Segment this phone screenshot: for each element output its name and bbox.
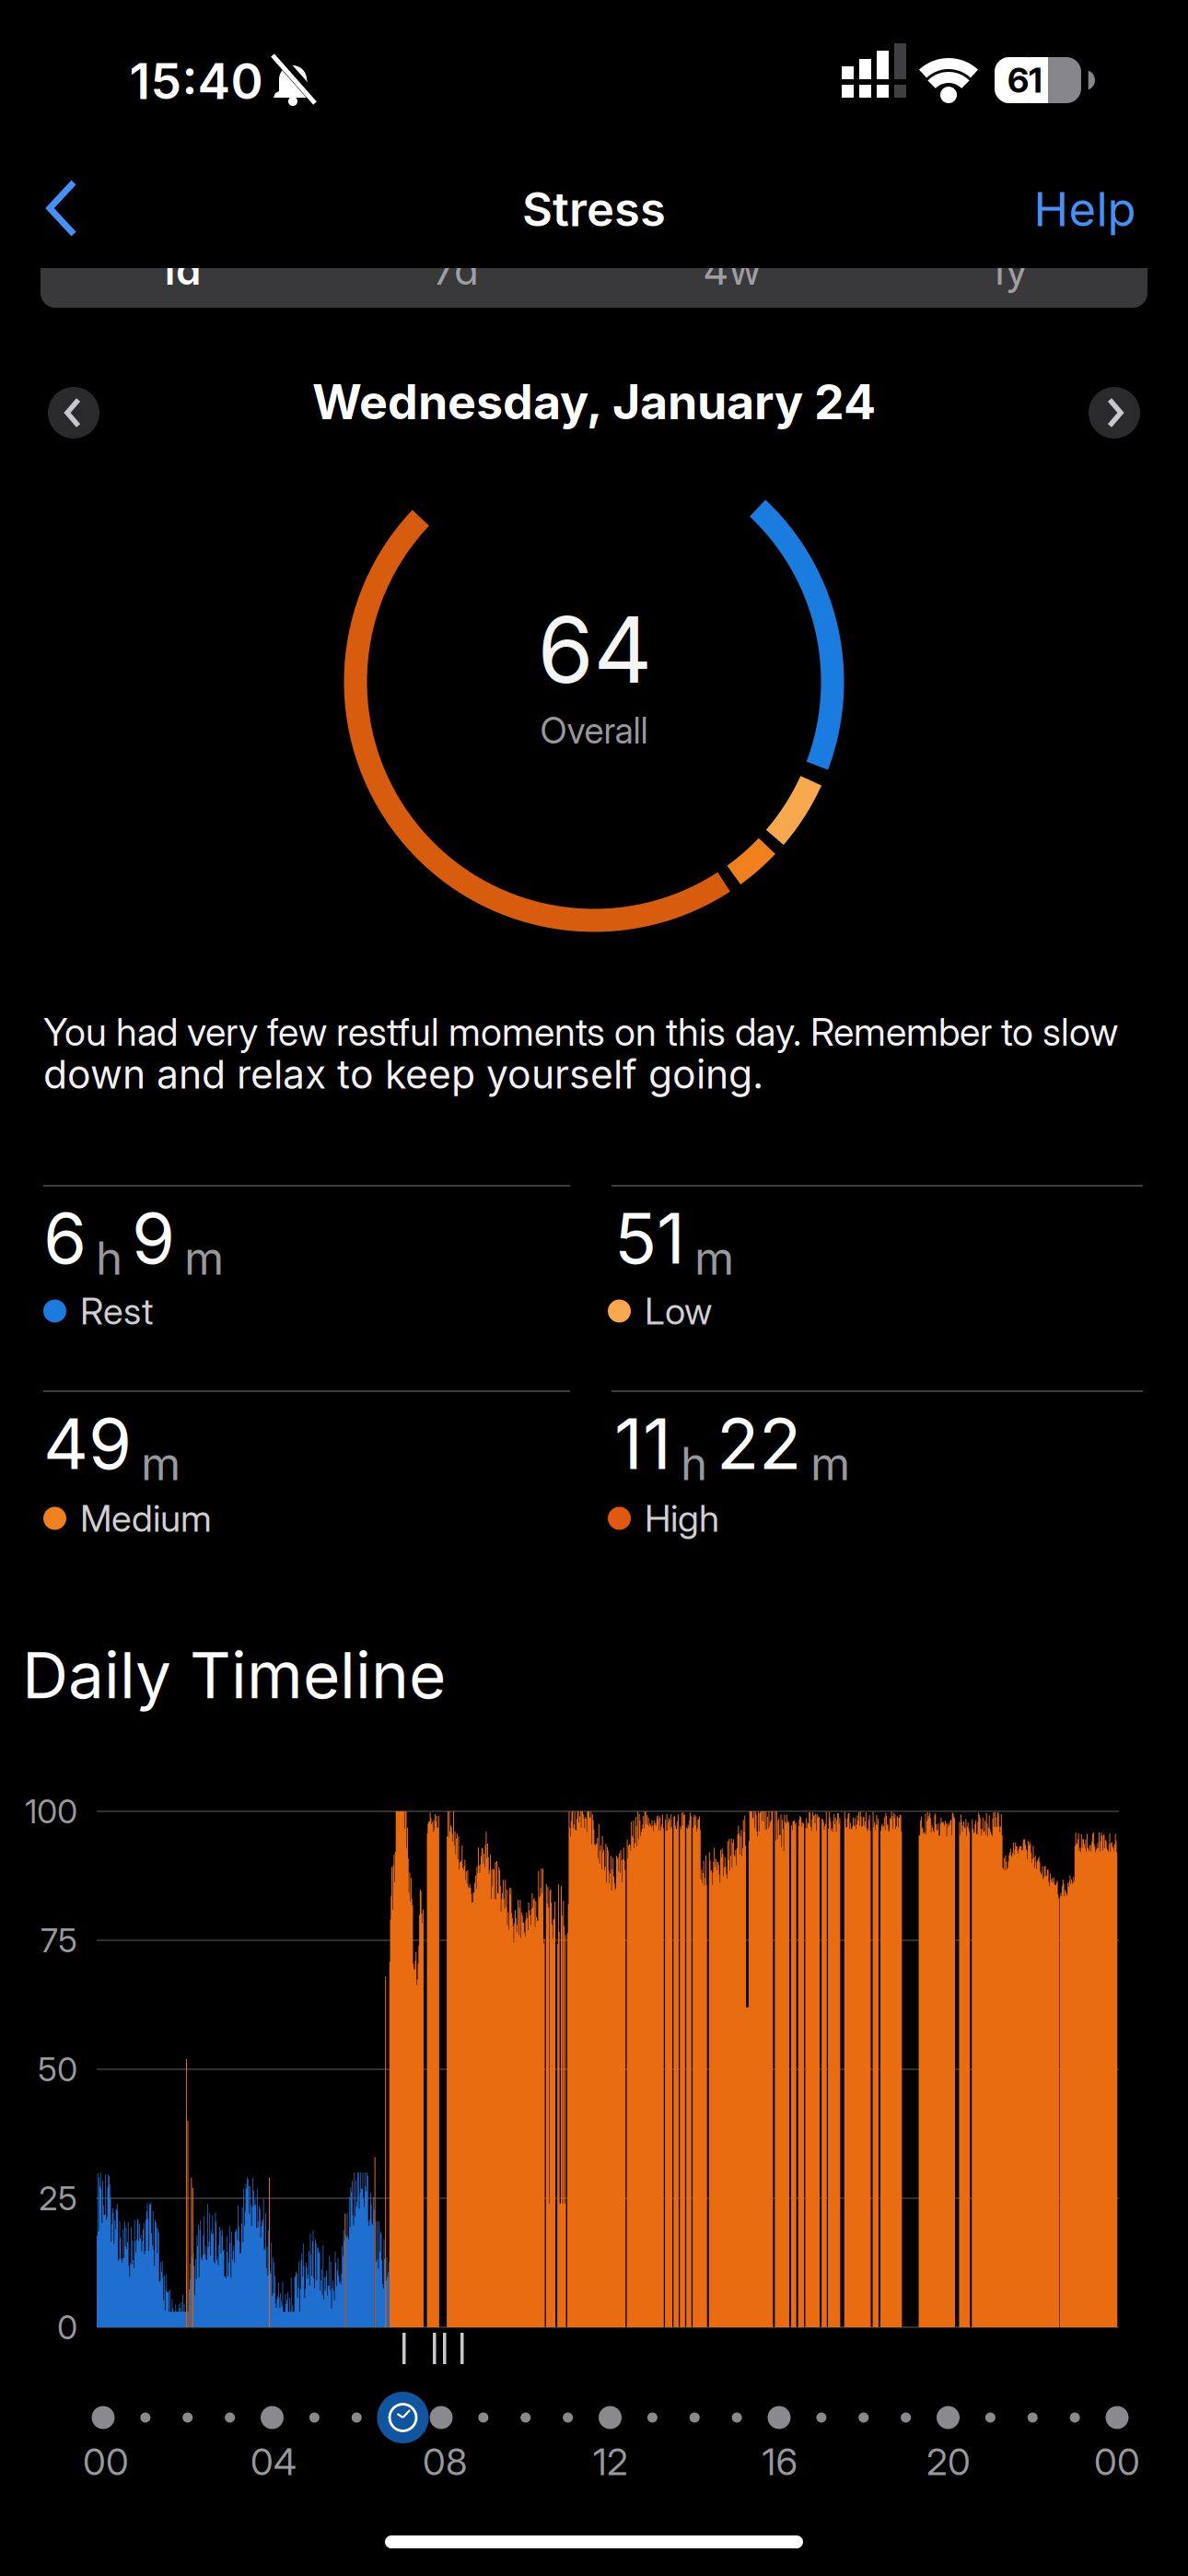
staticText: 15:40: [129, 52, 263, 110]
staticText: m: [810, 1437, 850, 1490]
staticText: 22: [716, 1402, 801, 1485]
staticText: 08: [423, 2440, 467, 2483]
staticText: m: [184, 1231, 224, 1285]
staticText: 6: [43, 1197, 87, 1279]
staticText: down and relax to keep yourself going.: [43, 1051, 763, 1097]
staticText: 100: [25, 1792, 77, 1831]
button[interactable]: Previous day: [48, 387, 99, 439]
staticText: 7d: [433, 246, 479, 294]
button[interactable]: Back: [46, 181, 101, 236]
staticText: 75: [41, 1921, 77, 1960]
staticText: Overall: [540, 710, 648, 752]
staticText: 04: [250, 2440, 297, 2483]
staticText: 16: [762, 2440, 798, 2483]
staticText: 1d: [158, 246, 201, 294]
staticText: Daily Timeline: [22, 1637, 446, 1713]
staticText: 1y: [989, 246, 1028, 294]
button[interactable]: 1y: [870, 238, 1147, 302]
staticText: 49: [43, 1402, 132, 1485]
staticText: 00: [1094, 2440, 1140, 2483]
staticText: 20: [926, 2440, 971, 2483]
staticText: m: [141, 1437, 181, 1490]
staticText: 9: [132, 1197, 175, 1279]
staticText: Rest: [80, 1289, 154, 1333]
staticText: 00: [83, 2440, 129, 2483]
staticText: Low: [645, 1289, 712, 1333]
button[interactable]: 1d: [41, 238, 318, 302]
button[interactable]: Help: [1034, 182, 1136, 237]
staticText: Wednesday, January 24: [312, 373, 876, 430]
staticText: 11: [614, 1402, 671, 1485]
staticText: 0: [57, 2308, 77, 2347]
staticText: 64: [537, 596, 652, 703]
staticText: Help: [1034, 182, 1136, 237]
staticText: 4w: [703, 246, 762, 294]
staticText: h: [96, 1231, 122, 1285]
staticText: Stress: [522, 182, 666, 237]
staticText: Medium: [80, 1497, 212, 1540]
staticText: 61: [1007, 60, 1042, 100]
staticText: h: [681, 1437, 707, 1490]
button[interactable]: Selected time: [377, 2392, 429, 2443]
staticText: 12: [593, 2440, 628, 2483]
staticText: m: [694, 1231, 734, 1285]
staticText: High: [645, 1497, 719, 1540]
button[interactable]: 4w: [594, 238, 870, 302]
staticText: 51: [614, 1197, 685, 1279]
button[interactable]: Next day: [1089, 387, 1140, 439]
button[interactable]: 7d: [318, 238, 594, 302]
staticText: 25: [39, 2179, 77, 2218]
staticText: You had very few restful moments on this…: [43, 1009, 1118, 1054]
staticText: 50: [38, 2050, 77, 2089]
